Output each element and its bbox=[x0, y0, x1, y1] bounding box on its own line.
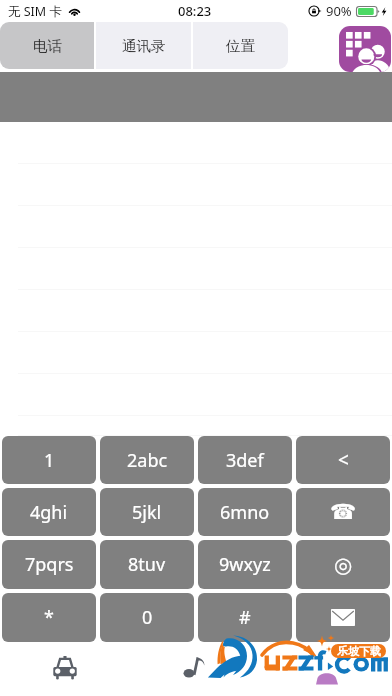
button[interactable]: Message bbox=[296, 593, 390, 642]
button[interactable]: 6mno bbox=[198, 488, 292, 536]
button[interactable]: 2abc bbox=[100, 436, 194, 484]
staticText: 90% bbox=[326, 2, 352, 20]
button[interactable]: 位置 bbox=[193, 22, 288, 69]
staticText: 08:23 bbox=[178, 2, 212, 20]
button[interactable]: 9wxyz bbox=[198, 540, 292, 589]
button[interactable]: 电话 bbox=[0, 22, 94, 69]
staticText: ◎ bbox=[334, 553, 353, 577]
button[interactable]: Call bbox=[296, 488, 390, 536]
button[interactable]: 0 bbox=[100, 593, 194, 642]
button[interactable]: 5jkl bbox=[100, 488, 194, 536]
staticText: 8tuv bbox=[128, 552, 166, 577]
staticText: 无 SIM 卡 bbox=[8, 3, 62, 20]
staticText: < bbox=[338, 447, 349, 473]
staticText: 6mno bbox=[220, 500, 270, 525]
button[interactable]: Video bbox=[261, 642, 392, 696]
button[interactable]: # bbox=[198, 593, 292, 642]
staticText: 9wxyz bbox=[219, 552, 271, 577]
staticText: 电话 bbox=[33, 37, 62, 55]
staticText: 5jkl bbox=[132, 500, 162, 525]
staticText: 0 bbox=[142, 605, 153, 630]
button[interactable]: * bbox=[2, 593, 96, 642]
button[interactable]: < bbox=[296, 436, 390, 484]
staticText: 4ghi bbox=[30, 500, 68, 525]
staticText: ☎ bbox=[330, 500, 357, 524]
button[interactable]: 4ghi bbox=[2, 488, 96, 536]
button[interactable]: Music bbox=[130, 642, 261, 696]
button[interactable]: 7pqrs bbox=[2, 540, 96, 589]
button[interactable]: Record bbox=[296, 540, 390, 589]
staticText: 3def bbox=[226, 448, 264, 473]
staticText: 1 bbox=[44, 448, 55, 473]
staticText: * bbox=[44, 605, 54, 630]
staticText: 乐坡下载 bbox=[337, 644, 381, 658]
button[interactable]: Taxi bbox=[0, 642, 130, 696]
button[interactable]: 1 bbox=[2, 436, 96, 484]
staticText: 7pqrs bbox=[25, 552, 74, 577]
staticText: 2abc bbox=[127, 448, 168, 473]
staticText: 通讯录 bbox=[122, 37, 166, 55]
staticText: 位置 bbox=[226, 37, 255, 55]
staticText: # bbox=[239, 605, 251, 630]
button[interactable]: 3def bbox=[198, 436, 292, 484]
button[interactable]: 通讯录 bbox=[96, 22, 191, 69]
button[interactable]: Contacts bbox=[339, 26, 391, 72]
button[interactable]: 8tuv bbox=[100, 540, 194, 589]
